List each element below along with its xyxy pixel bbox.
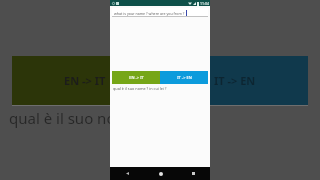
staticText: qual è il suo nom — [9, 108, 130, 128]
staticText: qual è il suo nome ? in cui lei ? — [113, 86, 167, 91]
staticText: EN -> IT — [129, 75, 144, 80]
staticText: 11:04 — [200, 1, 209, 6]
staticText: IT -> EN — [214, 73, 256, 88]
button[interactable]: Home — [144, 167, 177, 180]
button[interactable]: Back — [110, 167, 144, 180]
button[interactable]: Recents — [177, 167, 210, 180]
staticText: EN -> IT — [64, 73, 106, 88]
button[interactable]: EN -> IT — [112, 71, 160, 84]
button[interactable]: what is your name ? where are you from ? — [112, 8, 208, 17]
button[interactable]: IT -> EN — [160, 71, 208, 84]
staticText: what is your name ? where are you from ? — [114, 11, 185, 16]
staticText: IT -> EN — [177, 75, 192, 80]
